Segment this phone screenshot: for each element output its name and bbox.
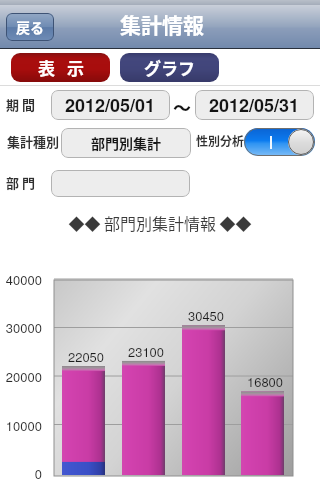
- staticText: 期 間: [6, 95, 35, 114]
- button[interactable]: [51, 170, 190, 197]
- staticText: 0: [0, 464, 42, 480]
- staticText: 30450: [172, 306, 240, 325]
- staticText: 16800: [231, 372, 299, 391]
- staticText: 22050: [52, 347, 120, 366]
- staticText: 〜: [173, 94, 191, 120]
- staticText: 10000: [0, 416, 42, 435]
- staticText: 部門別集計: [91, 133, 161, 153]
- button[interactable]: 戻る: [6, 13, 54, 41]
- button[interactable]: 2012/05/01: [51, 90, 170, 120]
- button[interactable]: グラフ: [120, 53, 219, 82]
- staticText: 部 門: [6, 173, 35, 192]
- staticText: 30000: [0, 318, 42, 337]
- staticText: 戻る: [16, 17, 44, 37]
- staticText: 示: [67, 55, 84, 80]
- button[interactable]: 2012/05/31: [195, 90, 314, 120]
- staticText: ◆◆ 部門別集計情報 ◆◆: [0, 211, 320, 234]
- staticText: 表: [38, 55, 55, 80]
- staticText: 40000: [0, 270, 42, 289]
- button[interactable]: 性別分析 切り替え: [244, 128, 315, 156]
- staticText: 2012/05/31: [209, 92, 300, 118]
- button[interactable]: 表: [11, 53, 110, 82]
- staticText: 集計情報: [120, 9, 204, 39]
- staticText: 集計種別: [7, 132, 60, 151]
- staticText: 2012/05/01: [65, 92, 156, 118]
- staticText: 23100: [112, 342, 180, 361]
- button[interactable]: 部門別集計: [61, 128, 191, 158]
- staticText: 性別分析: [196, 132, 245, 149]
- staticText: 20000: [0, 367, 42, 386]
- staticText: グラフ: [144, 55, 195, 80]
